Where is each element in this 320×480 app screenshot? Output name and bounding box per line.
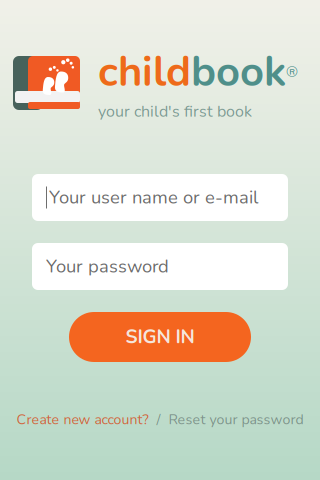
button[interactable]: SIGN IN	[69, 312, 251, 362]
staticText: Your user name or e-mail	[49, 185, 258, 210]
staticText: Create new account?	[16, 410, 148, 429]
staticText: /	[148, 410, 168, 429]
button[interactable]: Your user name or e-mail	[32, 174, 288, 221]
button[interactable]: Reset your password	[168, 410, 303, 429]
staticText: book	[191, 44, 286, 100]
staticText: SIGN IN	[125, 324, 194, 350]
staticText: your child's first book	[98, 100, 252, 122]
staticText: Reset your password	[168, 410, 303, 429]
staticText: ®	[286, 62, 298, 82]
staticText: Your password	[46, 254, 169, 279]
staticText: child	[98, 44, 191, 100]
button[interactable]: Your password	[32, 243, 288, 290]
button[interactable]: Create new account?	[16, 410, 148, 429]
